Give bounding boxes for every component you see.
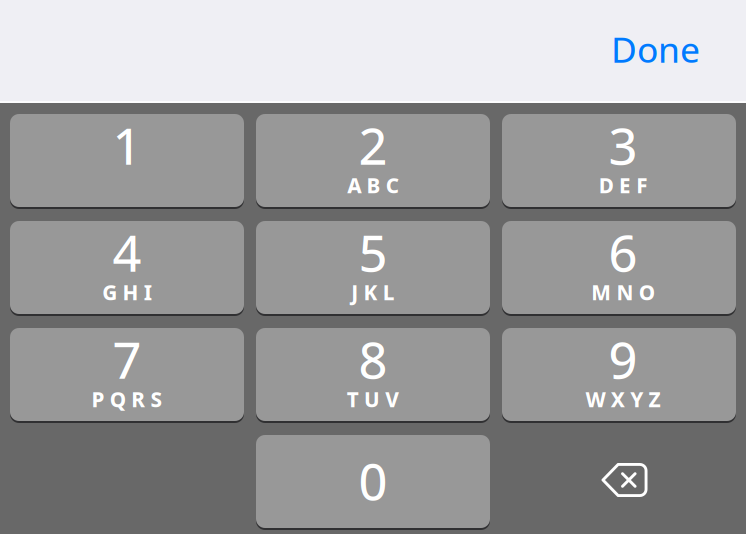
- button[interactable]: 4: [10, 221, 244, 314]
- staticText: 1: [112, 110, 141, 179]
- staticText: PQRS: [92, 385, 162, 413]
- button[interactable]: 2: [256, 114, 490, 207]
- staticText: WXYZ: [586, 385, 660, 413]
- button[interactable]: 0: [256, 435, 490, 528]
- staticText: 9: [608, 324, 637, 393]
- button[interactable]: Delete: [502, 435, 736, 528]
- button[interactable]: 3: [502, 114, 736, 207]
- staticText: MNO: [591, 278, 655, 306]
- button[interactable]: 7: [10, 328, 244, 421]
- staticText: GHI: [102, 278, 152, 306]
- staticText: 4: [112, 217, 141, 286]
- staticText: JKL: [351, 278, 395, 306]
- button[interactable]: 9: [502, 328, 736, 421]
- button[interactable]: 1: [10, 114, 244, 207]
- staticText: 7: [112, 324, 141, 393]
- staticText: 3: [608, 110, 637, 179]
- staticText: DEF: [599, 171, 647, 199]
- staticText: 2: [358, 110, 387, 179]
- staticText: 8: [358, 324, 387, 393]
- staticText: 5: [358, 217, 387, 286]
- button[interactable]: 5: [256, 221, 490, 314]
- button[interactable]: 8: [256, 328, 490, 421]
- staticText: 0: [358, 446, 387, 515]
- staticText: 6: [608, 217, 637, 286]
- staticText: TUV: [347, 385, 399, 413]
- staticText: ABC: [347, 171, 399, 199]
- button[interactable]: Done: [595, 14, 716, 86]
- button[interactable]: 6: [502, 221, 736, 314]
- staticText: Done: [611, 25, 700, 73]
